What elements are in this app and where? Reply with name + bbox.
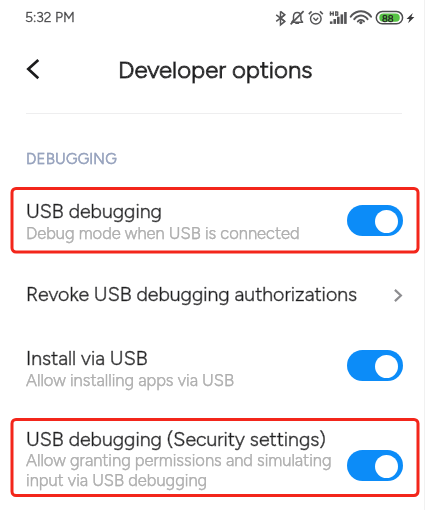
staticText: Allow granting permissions and simulatin… — [26, 450, 332, 470]
staticText: Revoke USB debugging authorizations — [26, 282, 358, 305]
staticText: Install via USB — [26, 346, 148, 369]
staticText: input via USB debugging — [26, 470, 208, 490]
staticText: 88 — [382, 13, 394, 24]
staticText: Revoke USB debugging authorizations — [26, 282, 358, 305]
staticText: USB debugging — [26, 199, 162, 222]
staticText: 5:32 PM — [25, 9, 75, 26]
staticText: input via USB debugging — [26, 470, 208, 490]
staticText: DEBUGGING — [26, 150, 117, 168]
staticText: Developer options — [118, 55, 313, 84]
staticText: Debug mode when USB is connected — [26, 223, 300, 243]
button[interactable] — [0, 189, 431, 252]
staticText: Allow installing apps via USB — [26, 370, 234, 390]
staticText: 88 — [382, 13, 394, 24]
staticText: Debug mode when USB is connected — [26, 223, 300, 243]
staticText: Allow granting permissions and simulatin… — [26, 450, 332, 470]
staticText: DEBUGGING — [26, 150, 117, 168]
button[interactable]: Switch, on — [347, 205, 403, 236]
button[interactable]: Switch, on — [347, 350, 403, 381]
staticText: Developer options — [118, 55, 313, 84]
staticText: Install via USB — [26, 346, 148, 369]
button[interactable] — [0, 336, 431, 399]
staticText: USB debugging (Security settings) — [26, 427, 326, 450]
staticText: 5:32 PM — [25, 9, 75, 26]
button[interactable]: Switch, on — [347, 450, 403, 481]
button[interactable] — [0, 269, 431, 318]
staticText: USB debugging (Security settings) — [26, 427, 326, 450]
staticText: USB debugging — [26, 199, 162, 222]
staticText: Allow installing apps via USB — [26, 370, 234, 390]
button[interactable]: Back — [16, 52, 50, 86]
button[interactable] — [0, 420, 431, 496]
